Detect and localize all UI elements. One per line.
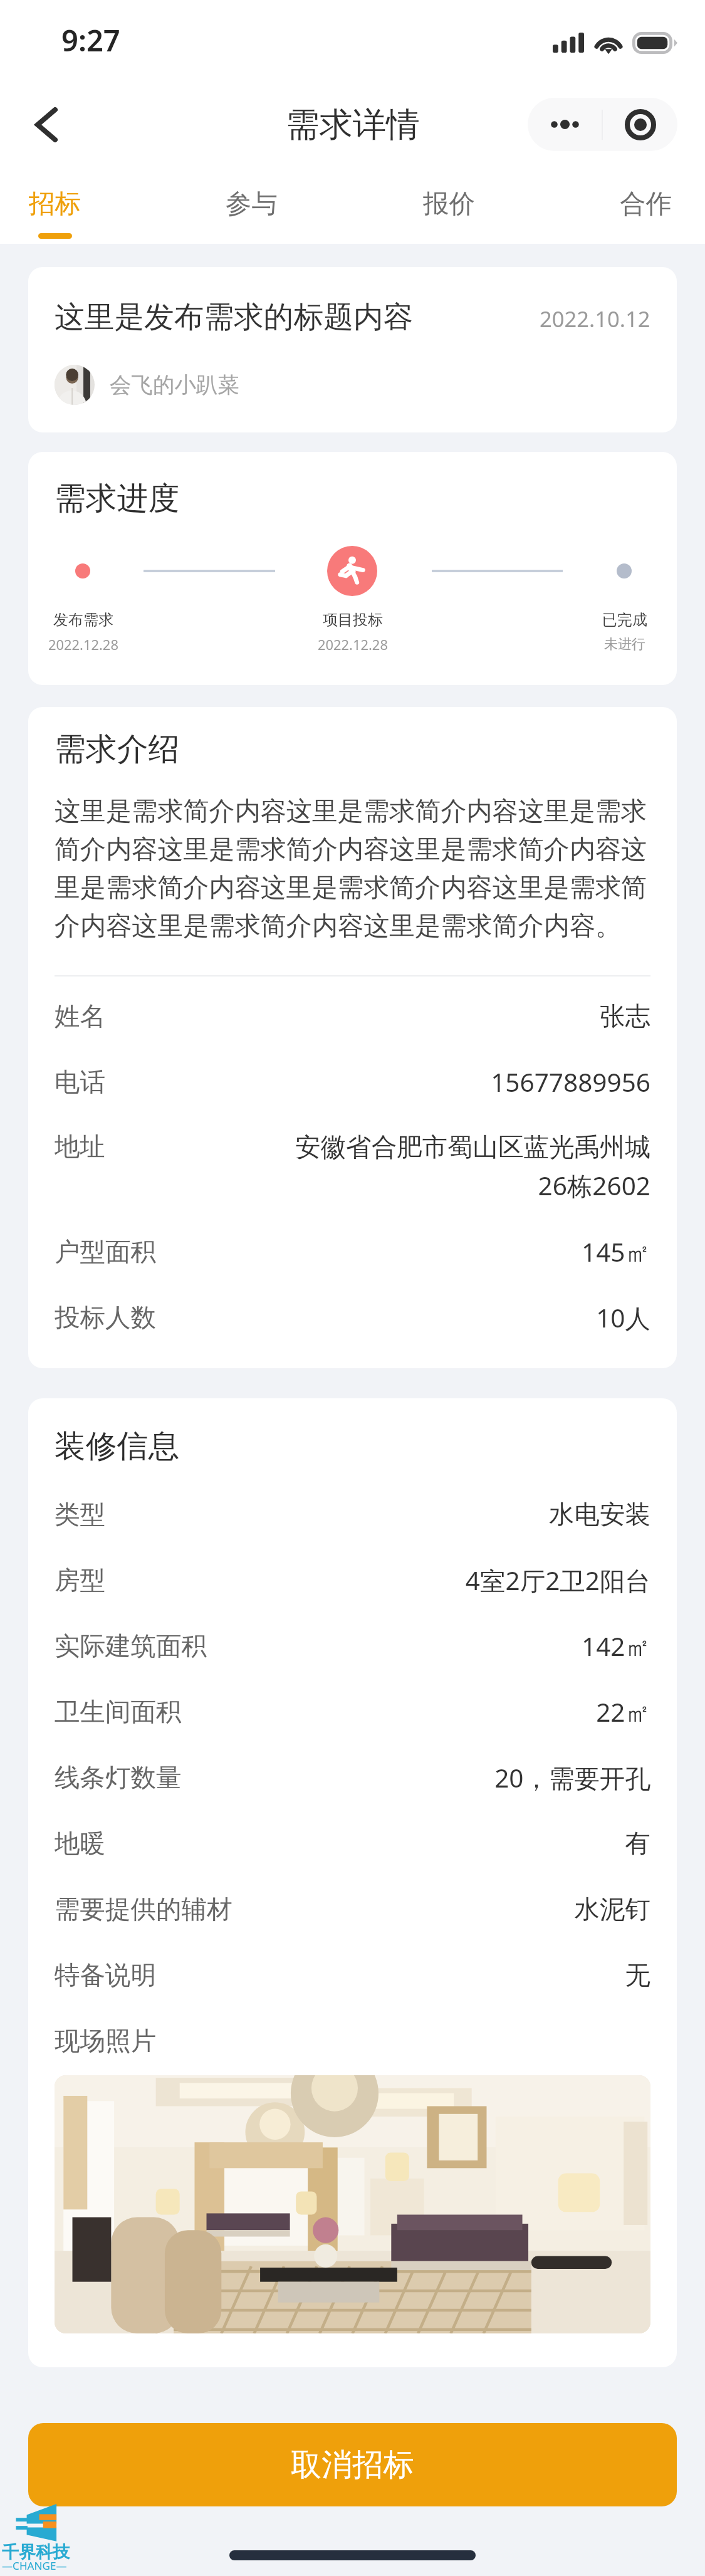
staticText: 地址: [55, 1131, 105, 1163]
staticText: 地暖: [55, 1828, 105, 1860]
staticText: 安徽省合肥市蜀山区蓝光禹州城26栋2602: [282, 1131, 650, 1203]
staticText: 需求详情: [286, 104, 420, 146]
staticText: 这里是发布需求的标题内容: [55, 298, 540, 336]
staticText: 2022.12.28: [48, 636, 118, 654]
staticText: 类型: [55, 1499, 105, 1531]
staticText: 姓名: [55, 1000, 105, 1032]
staticText: 招标: [29, 187, 81, 220]
staticText: 22㎡: [596, 1695, 650, 1729]
staticText: 取消招标: [291, 2446, 414, 2484]
staticText: 项目投标: [323, 610, 383, 629]
staticText: 2022.10.12: [540, 304, 650, 333]
staticText: 有: [625, 1828, 650, 1860]
staticText: 需求介绍: [55, 730, 180, 769]
staticText: 这里是需求简介内容这里是需求简介内容这里是需求简介内容这里是需求简介内容这里是需…: [55, 795, 650, 942]
staticText: 线条灯数量: [55, 1762, 182, 1794]
staticText: 报价: [423, 187, 475, 220]
staticText: 需求进度: [55, 479, 180, 518]
staticText: 已完成: [602, 610, 647, 629]
button[interactable]: 招标: [29, 166, 81, 244]
staticText: 投标人数: [55, 1302, 156, 1334]
button[interactable]: 报价: [423, 166, 475, 244]
staticText: 2022.12.28: [318, 636, 388, 654]
staticText: 未进行: [604, 636, 645, 653]
button[interactable]: More options: [528, 98, 602, 151]
staticText: 参与: [226, 187, 278, 220]
staticText: 电话: [55, 1066, 105, 1098]
staticText: 9:27: [61, 20, 120, 60]
staticText: 会飞的小趴菜: [110, 372, 239, 399]
staticText: 20，需要开孔: [494, 1761, 650, 1795]
staticText: 现场照片: [55, 2025, 156, 2057]
staticText: 特备说明: [55, 1959, 156, 1991]
staticText: 145㎡: [582, 1235, 650, 1269]
staticText: 无: [625, 1959, 650, 1991]
staticText: 房型: [55, 1564, 105, 1596]
button[interactable]: 合作: [620, 166, 672, 244]
staticText: 合作: [620, 187, 672, 220]
staticText: 水电安装: [549, 1499, 650, 1531]
staticText: 发布需求: [53, 610, 113, 629]
staticText: 10人: [596, 1301, 650, 1335]
staticText: 水泥钉: [574, 1893, 650, 1925]
staticText: 装修信息: [55, 1427, 180, 1466]
staticText: 4室2厅2卫2阳台: [465, 1563, 650, 1598]
button[interactable]: Back: [9, 87, 84, 162]
staticText: 千界科技: [2, 2542, 70, 2563]
staticText: 需要提供的辅材: [55, 1893, 232, 1925]
staticText: —CHANGE—: [2, 2558, 67, 2573]
button[interactable]: Mini program menu: [603, 98, 677, 151]
button[interactable]: 取消招标: [28, 2423, 677, 2506]
staticText: 实际建筑面积: [55, 1630, 207, 1662]
staticText: 142㎡: [582, 1629, 650, 1663]
staticText: 卫生间面积: [55, 1696, 182, 1728]
staticText: 张志: [600, 1000, 650, 1032]
button[interactable]: 参与: [226, 166, 278, 244]
staticText: 15677889956: [491, 1065, 650, 1099]
staticText: 户型面积: [55, 1236, 156, 1268]
